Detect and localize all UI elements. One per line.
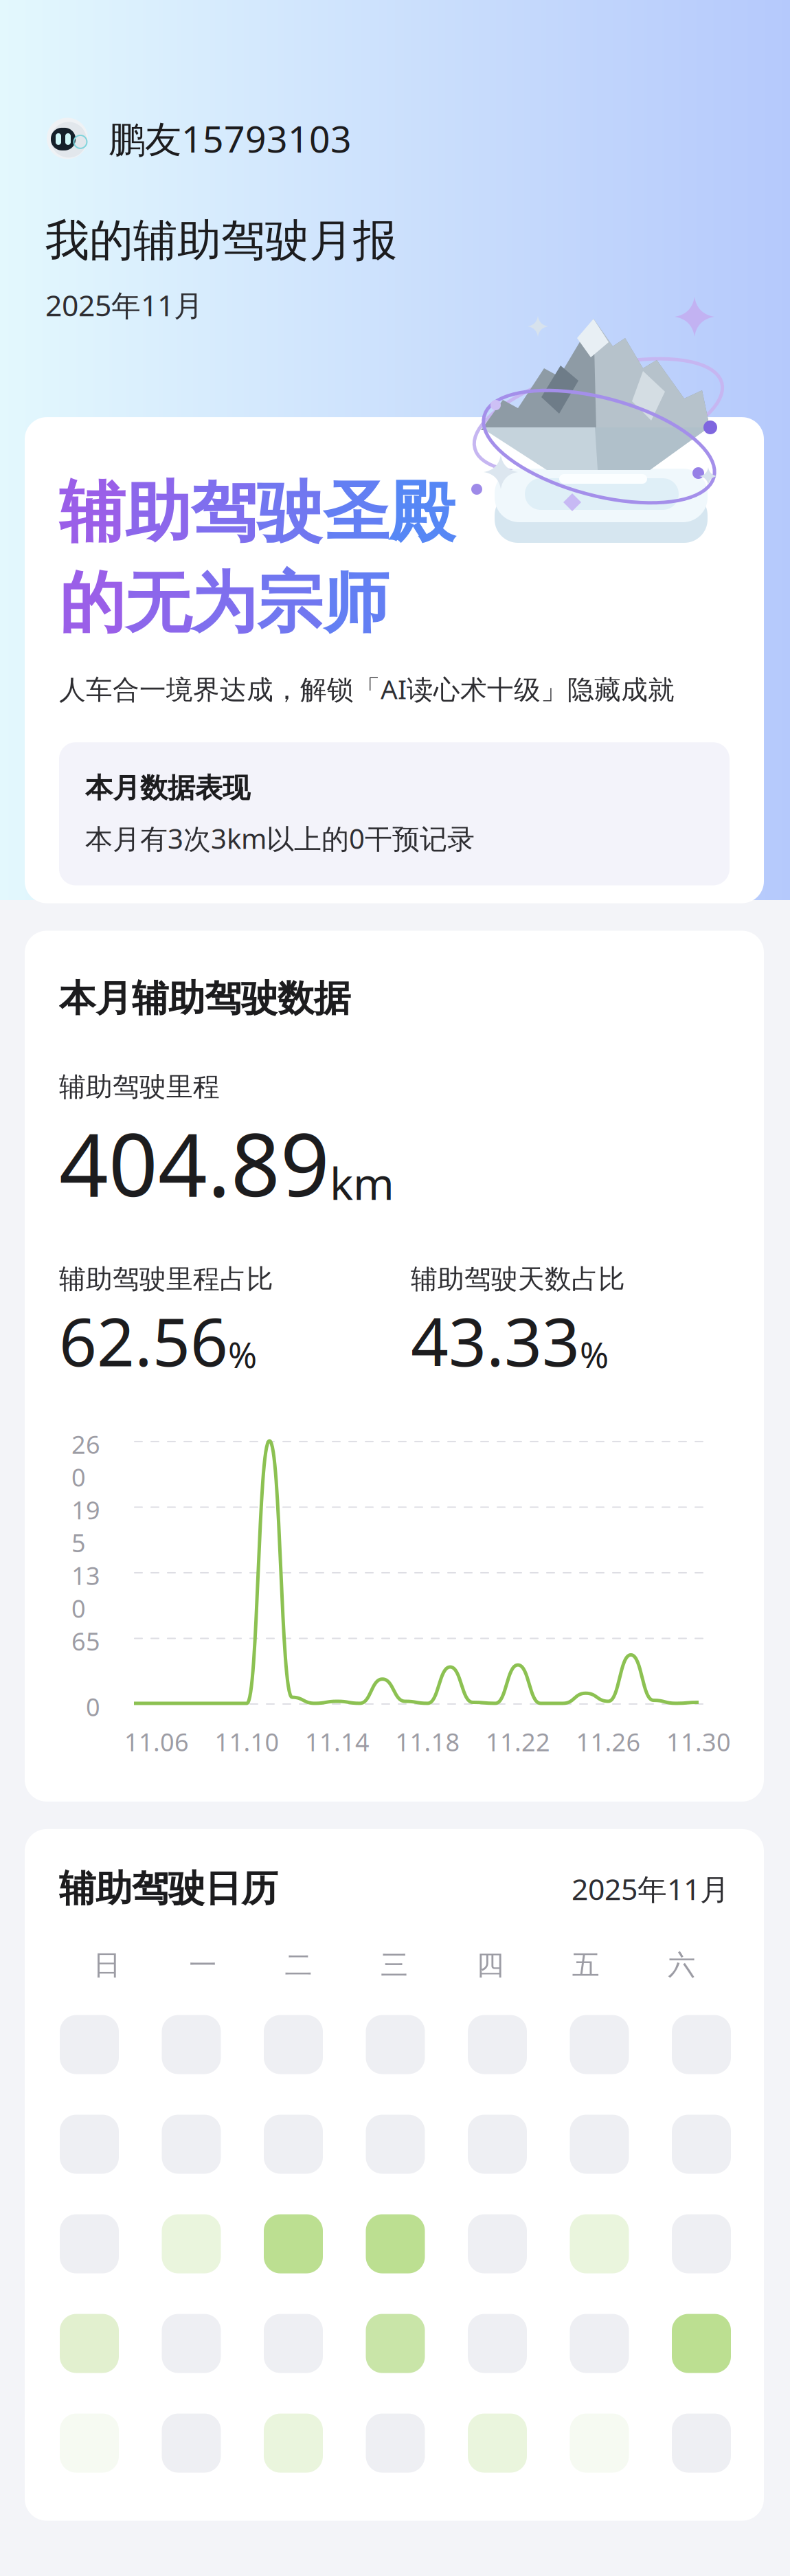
staticText: 本月数据表现 xyxy=(85,771,250,805)
staticText: 11.14 xyxy=(305,1725,370,1758)
staticText: 11.26 xyxy=(576,1725,641,1758)
staticText: 的 xyxy=(59,563,125,644)
staticText: 260 xyxy=(71,1428,100,1493)
staticText: 驾 xyxy=(191,472,257,553)
staticText: 辅助驾驶里程 xyxy=(59,1071,220,1103)
button[interactable]: 鹏友15793103 xyxy=(0,0,352,163)
staticText: km xyxy=(330,1154,394,1212)
staticText: 日 xyxy=(93,1948,121,1982)
staticText: 65 xyxy=(71,1625,100,1657)
staticText: 辅助驾驶日历 xyxy=(59,1866,278,1911)
staticText: 人车合一境界达成，解锁「AI读心术十级」隐藏成就 xyxy=(59,671,675,706)
staticText: 11.30 xyxy=(666,1725,731,1758)
staticText: 本月辅助驾驶数据 xyxy=(59,976,350,1021)
staticText: 195 xyxy=(71,1493,100,1559)
staticText: 四 xyxy=(476,1948,504,1982)
staticText: 五 xyxy=(572,1948,600,1982)
staticText: 三 xyxy=(381,1948,408,1982)
staticText: 辅助驾驶天数占比 xyxy=(411,1263,625,1296)
staticText: 助 xyxy=(125,472,191,553)
staticText: % xyxy=(228,1331,257,1378)
staticText: 六 xyxy=(668,1948,695,1982)
staticText: 43.33 xyxy=(411,1297,580,1385)
staticText: 2025年11月 xyxy=(572,1869,730,1908)
staticText: 二 xyxy=(285,1948,312,1982)
staticText: 辅助驾驶里程占比 xyxy=(59,1263,273,1296)
staticText: % xyxy=(580,1331,609,1378)
staticText: 11.18 xyxy=(395,1725,460,1758)
staticText: 为 xyxy=(191,563,257,644)
staticText: 11.22 xyxy=(486,1725,550,1758)
staticText: 11.06 xyxy=(124,1725,189,1758)
staticText: 本月有3次3km以上的0干预记录 xyxy=(85,820,475,856)
staticText: 62.56 xyxy=(59,1297,228,1385)
staticText: 驶 xyxy=(257,472,323,553)
staticText: 师 xyxy=(323,563,389,644)
staticText: 130 xyxy=(71,1559,100,1625)
staticText: 404.89 xyxy=(59,1106,330,1220)
staticText: 宗 xyxy=(257,563,323,644)
staticText: 无 xyxy=(125,563,191,644)
staticText: 2025年11月 xyxy=(45,285,203,324)
staticText: 鹏友15793103 xyxy=(109,114,352,163)
staticText: 一 xyxy=(189,1948,216,1982)
staticText: 0 xyxy=(86,1690,100,1723)
staticText: 我的辅助驾驶月报 xyxy=(45,214,397,268)
staticText: 辅 xyxy=(59,472,125,553)
staticText: 殿 xyxy=(389,472,455,553)
staticText: 圣 xyxy=(323,472,389,553)
staticText: 11.10 xyxy=(215,1725,279,1758)
